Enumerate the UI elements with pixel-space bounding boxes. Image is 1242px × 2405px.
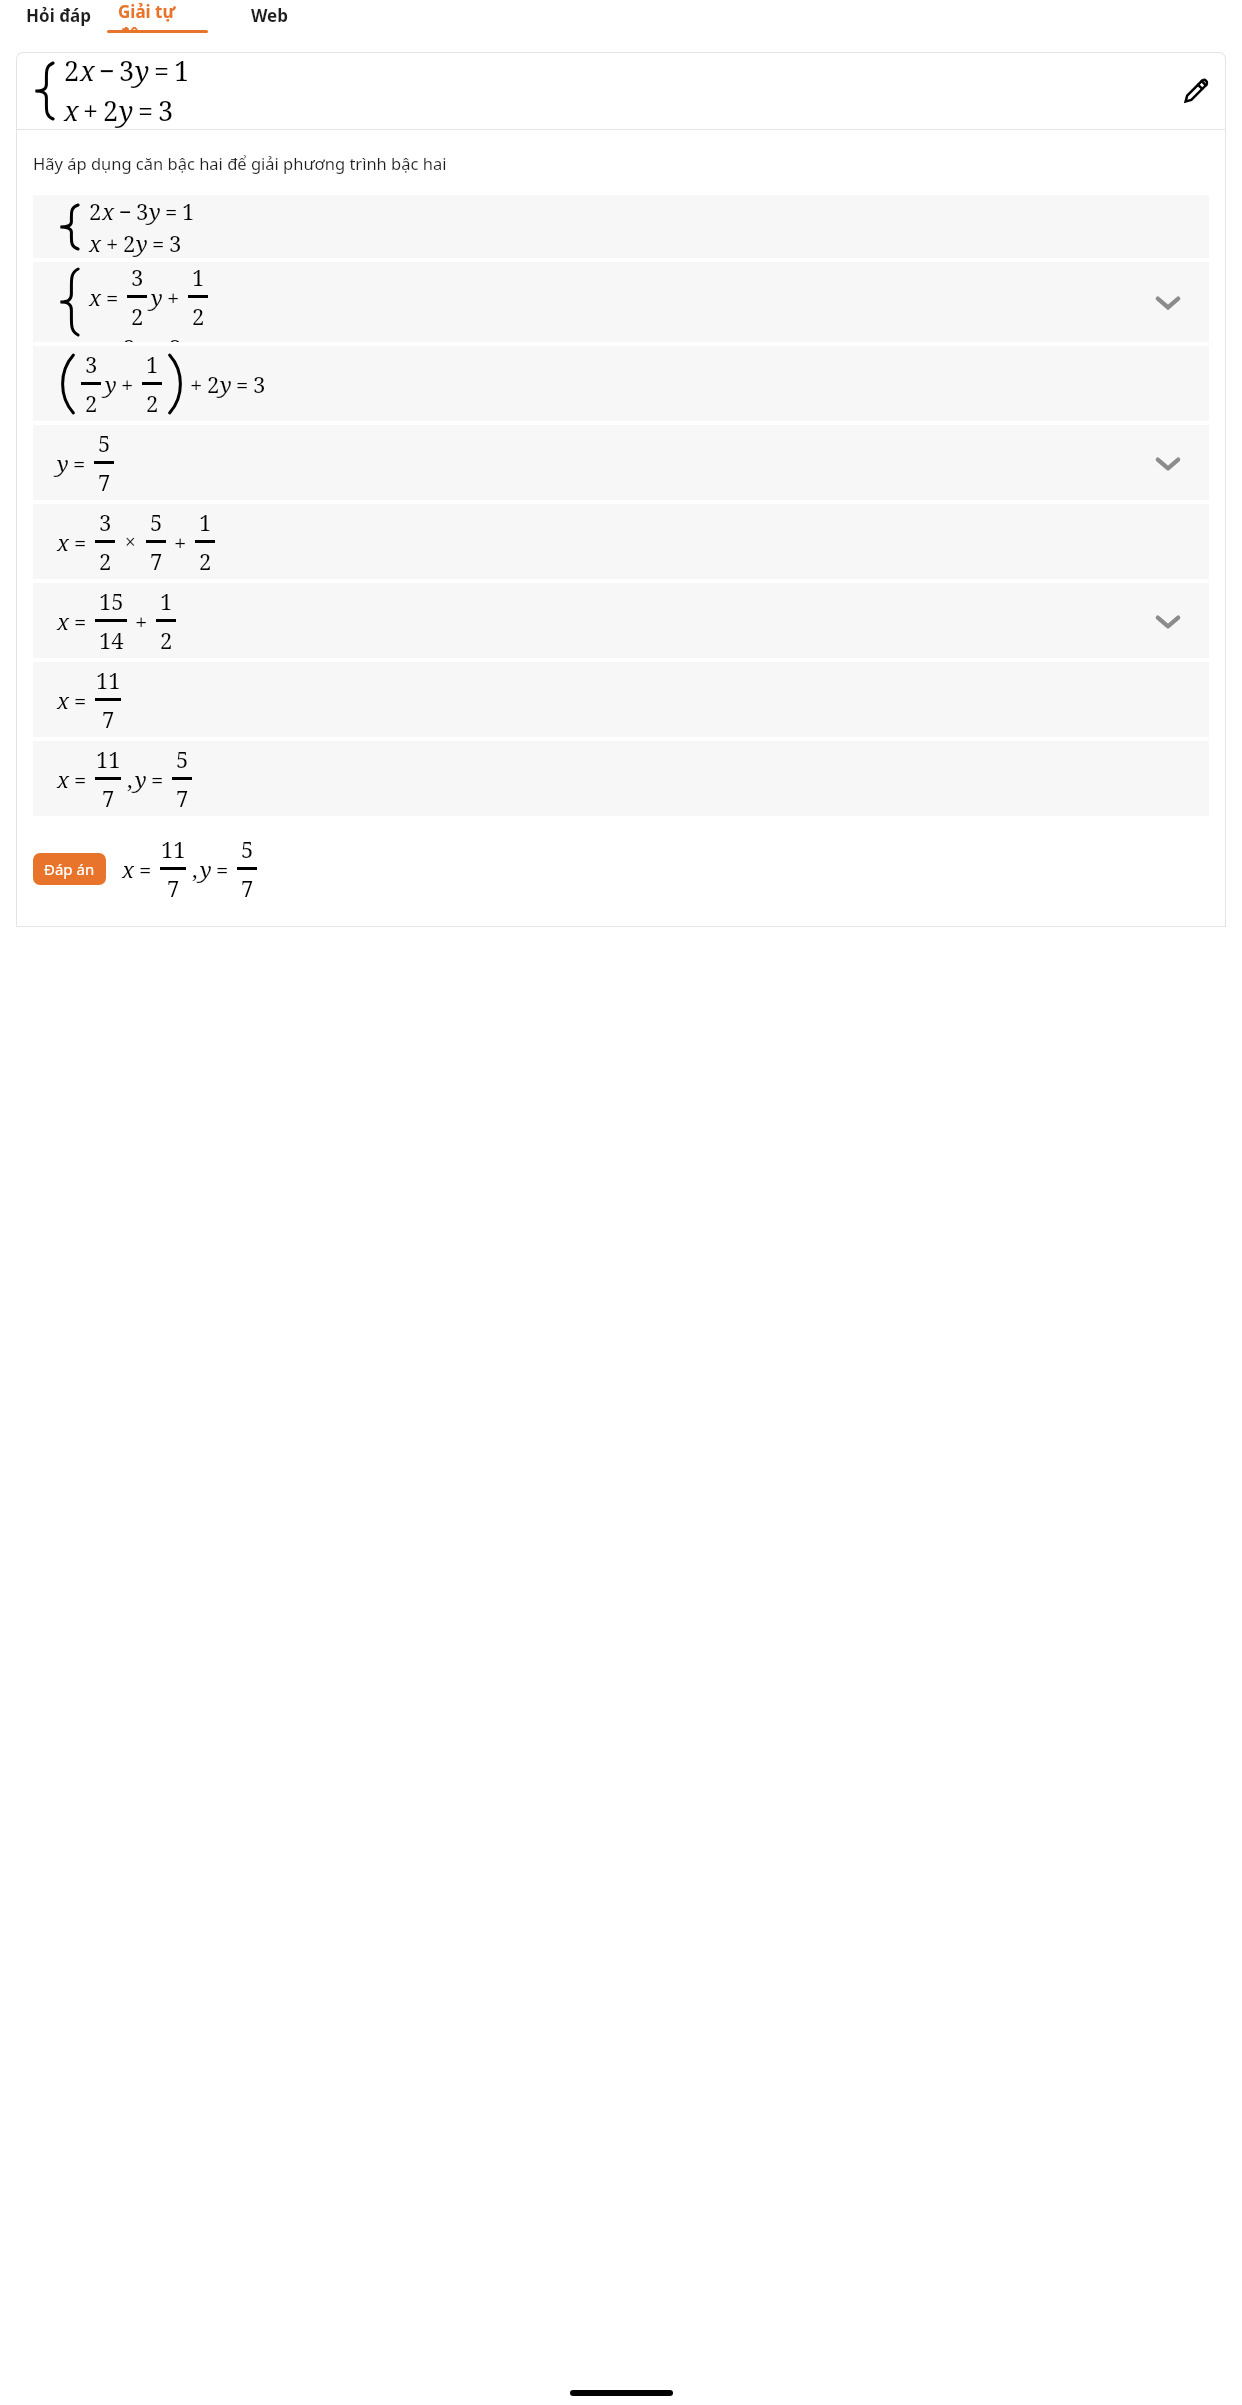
button[interactable]: 2: [33, 195, 1209, 258]
staticText: 2: [192, 301, 205, 331]
staticText: 2: [99, 546, 112, 576]
staticText: 11: [161, 834, 186, 864]
staticText: y: [119, 92, 134, 129]
staticText: +: [190, 369, 203, 399]
staticText: y: [151, 282, 163, 312]
staticText: ,: [192, 854, 198, 884]
staticText: x: [89, 228, 102, 258]
staticText: =: [152, 228, 165, 258]
staticText: x: [57, 685, 70, 715]
staticText: −: [99, 52, 115, 89]
button[interactable]: x: [33, 583, 1209, 658]
staticText: =: [165, 196, 178, 226]
staticText: 3: [169, 228, 182, 258]
staticText: 2: [199, 546, 212, 576]
button[interactable]: Chỉnh sửa: [1183, 78, 1209, 104]
staticText: 7: [102, 783, 115, 813]
staticText: 2: [131, 301, 144, 331]
staticText: 2: [123, 332, 136, 342]
staticText: y: [220, 369, 232, 399]
staticText: x: [64, 92, 79, 129]
staticText: 5: [241, 834, 254, 864]
staticText: x: [57, 527, 70, 557]
staticText: 3: [85, 349, 98, 379]
staticText: −: [119, 196, 132, 226]
staticText: 5: [176, 744, 189, 774]
staticText: 7: [176, 783, 189, 813]
other: Mở rộng bước giải: [1151, 446, 1185, 480]
button[interactable]: x: [33, 662, 1209, 737]
staticText: =: [74, 685, 87, 715]
staticText: 2: [160, 625, 173, 655]
staticText: =: [74, 527, 87, 557]
staticText: =: [106, 282, 119, 312]
staticText: 14: [99, 625, 124, 655]
staticText: =: [151, 764, 164, 794]
staticText: 7: [102, 704, 115, 734]
button[interactable]: 3: [33, 346, 1209, 421]
staticText: x: [102, 196, 115, 226]
button[interactable]: y: [33, 425, 1209, 500]
button[interactable]: Giải tự động: [118, 0, 221, 30]
staticText: y: [135, 764, 147, 794]
staticText: =: [154, 52, 170, 89]
staticText: 5: [98, 428, 111, 458]
staticText: 2: [123, 228, 136, 258]
staticText: x: [122, 854, 135, 884]
staticText: =: [138, 92, 154, 129]
staticText: 1: [146, 349, 159, 379]
staticText: 11: [96, 665, 121, 695]
staticText: ,: [127, 764, 133, 794]
button[interactable]: Hỏi đáp: [0, 0, 118, 30]
staticText: 11: [96, 744, 121, 774]
button[interactable]: x: [33, 262, 1209, 342]
button[interactable]: Web: [221, 0, 317, 30]
staticText: 3: [119, 52, 135, 89]
staticText: Hãy áp dụng căn bậc hai để giải phương t…: [33, 152, 1174, 174]
staticText: =: [74, 606, 87, 636]
staticText: x: [89, 282, 102, 312]
staticText: 2: [64, 52, 80, 89]
staticText: 3: [99, 507, 112, 537]
staticText: 1: [182, 196, 195, 226]
staticText: 2: [103, 92, 119, 129]
staticText: y: [136, 228, 148, 258]
staticText: 2: [89, 196, 102, 226]
staticText: 3: [131, 262, 144, 292]
staticText: =: [73, 448, 86, 478]
staticText: Hỏi đáp: [26, 4, 92, 27]
staticText: =: [216, 854, 229, 884]
staticText: 3: [253, 369, 266, 399]
staticText: ×: [125, 529, 136, 555]
staticText: 2: [85, 388, 98, 418]
staticText: y: [105, 369, 117, 399]
staticText: y: [149, 196, 161, 226]
staticText: 15: [99, 586, 124, 616]
button[interactable]: x: [33, 504, 1209, 579]
staticText: 5: [150, 507, 163, 537]
staticText: Web: [251, 4, 288, 27]
staticText: +: [121, 369, 134, 399]
staticText: 1: [160, 586, 173, 616]
button[interactable]: x: [33, 741, 1209, 816]
staticText: 7: [167, 873, 180, 903]
staticText: =: [74, 764, 87, 794]
staticText: 3: [158, 92, 174, 129]
staticText: =: [139, 854, 152, 884]
staticText: 1: [199, 507, 212, 537]
staticText: +: [106, 228, 119, 258]
staticText: y: [200, 854, 212, 884]
staticText: 3: [136, 196, 149, 226]
button[interactable]: Đáp án: [33, 834, 1209, 903]
staticText: Giải tự động: [118, 0, 221, 30]
staticText: 1: [192, 262, 205, 292]
other: Mở rộng bước giải: [1151, 285, 1185, 319]
staticText: x: [57, 606, 70, 636]
staticText: x: [80, 52, 95, 89]
staticText: 7: [241, 873, 254, 903]
staticText: 7: [98, 467, 111, 497]
staticText: y: [135, 52, 150, 89]
